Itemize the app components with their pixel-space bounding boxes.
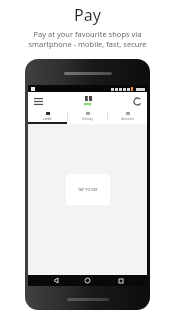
button[interactable]: cards xyxy=(28,109,67,124)
button[interactable]: Recents xyxy=(115,275,126,286)
button[interactable]: Back xyxy=(50,275,61,286)
staticText: history xyxy=(82,116,93,121)
button[interactable]: Menu xyxy=(32,95,44,107)
button[interactable]: history xyxy=(68,109,107,124)
staticText: pay xyxy=(84,101,92,106)
staticText: Pay xyxy=(74,4,101,26)
button[interactable]: Refresh xyxy=(131,95,143,107)
staticText: TAP TO PAY xyxy=(78,187,98,192)
button[interactable]: discover xyxy=(108,109,147,124)
staticText: discover xyxy=(121,116,135,121)
button[interactable]: Home xyxy=(82,275,93,286)
button[interactable]: TAP TO PAY xyxy=(66,174,110,205)
staticText: Pay at your favourite shops via smartpho… xyxy=(28,29,147,49)
staticText: cards xyxy=(43,116,52,121)
